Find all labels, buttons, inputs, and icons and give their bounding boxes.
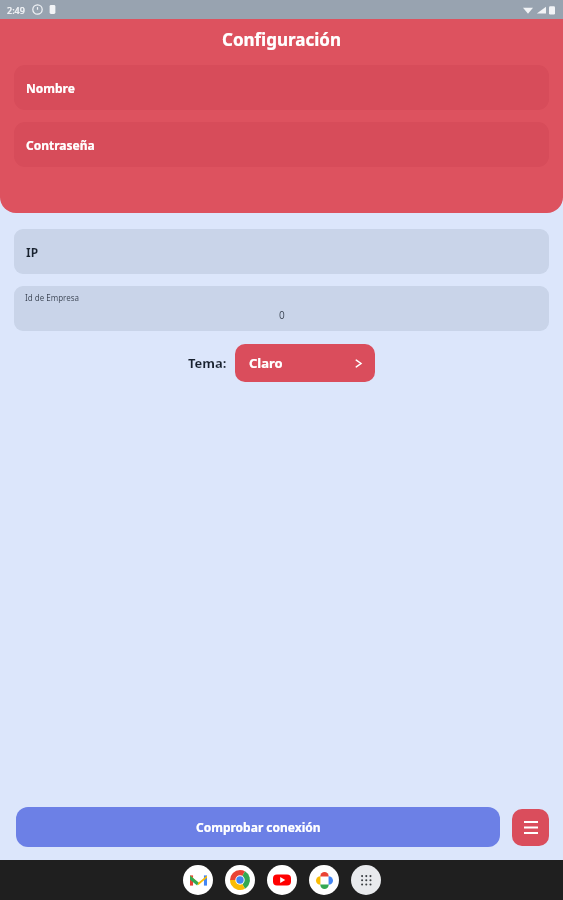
button[interactable]: Gmail xyxy=(183,865,213,895)
button[interactable]: Aplicaciones xyxy=(351,865,381,895)
staticText: 0 xyxy=(279,308,285,322)
staticText: IP xyxy=(26,244,39,260)
button[interactable]: Claro xyxy=(235,344,375,382)
button[interactable]: YouTube xyxy=(267,865,297,895)
button[interactable]: Nombre xyxy=(14,65,549,110)
button[interactable]: Fotos xyxy=(309,865,339,895)
button[interactable]: IP xyxy=(14,229,549,274)
button[interactable]: Menú xyxy=(512,809,549,846)
button[interactable]: Id de Empresa xyxy=(14,286,549,331)
staticText: Claro xyxy=(249,354,283,372)
staticText: Nombre xyxy=(26,80,75,96)
staticText: Configuración xyxy=(0,28,563,51)
staticText: Tema: xyxy=(188,354,227,372)
staticText: Comprobar conexión xyxy=(196,819,321,835)
button[interactable]: Comprobar conexión xyxy=(16,807,500,847)
staticText: Contraseña xyxy=(26,137,95,153)
button[interactable]: Contraseña xyxy=(14,122,549,167)
button[interactable]: Chrome xyxy=(225,865,255,895)
staticText: 2:49 xyxy=(7,4,25,16)
staticText: Id de Empresa xyxy=(25,292,80,303)
